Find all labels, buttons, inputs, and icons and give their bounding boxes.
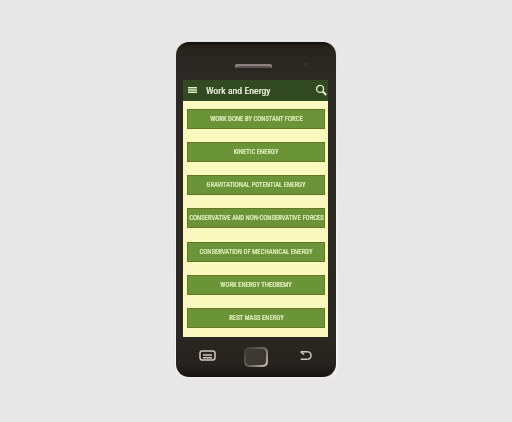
button[interactable]: Back	[294, 346, 317, 364]
button[interactable]: Recent apps	[195, 346, 219, 364]
button[interactable]: REST MASS ENERGY	[188, 309, 324, 327]
button[interactable]: CONSERVATION OF MECHANICAL ENERGY	[188, 243, 324, 261]
button[interactable]: WORK DONE BY CONSTANT FORCE	[188, 110, 324, 128]
staticText: REST MASS ENERGY	[229, 314, 284, 322]
staticText: CONSERVATION OF MECHANICAL ENERGY	[199, 248, 313, 256]
button[interactable]: KINETIC ENERGY	[188, 143, 324, 161]
staticText: Work and Energy	[206, 85, 271, 96]
button[interactable]: Home	[246, 349, 266, 365]
staticText: WORK ENERGY THEOREMY	[220, 281, 292, 289]
staticText: GRAVITATIONAL POTENTIAL ENERGY	[206, 181, 306, 189]
button[interactable]: Open navigation menu	[184, 84, 200, 98]
button[interactable]: Search	[312, 82, 328, 98]
staticText: KINETIC ENERGY	[233, 148, 279, 156]
button[interactable]: GRAVITATIONAL POTENTIAL ENERGY	[188, 176, 324, 194]
button[interactable]: CONSERVATIVE AND NON-CONSERVATIVE FORCES	[188, 209, 324, 227]
staticText: CONSERVATIVE AND NON-CONSERVATIVE FORCES	[189, 214, 324, 222]
staticText: WORK DONE BY CONSTANT FORCE	[210, 115, 303, 123]
button[interactable]: WORK ENERGY THEOREMY	[188, 276, 324, 294]
